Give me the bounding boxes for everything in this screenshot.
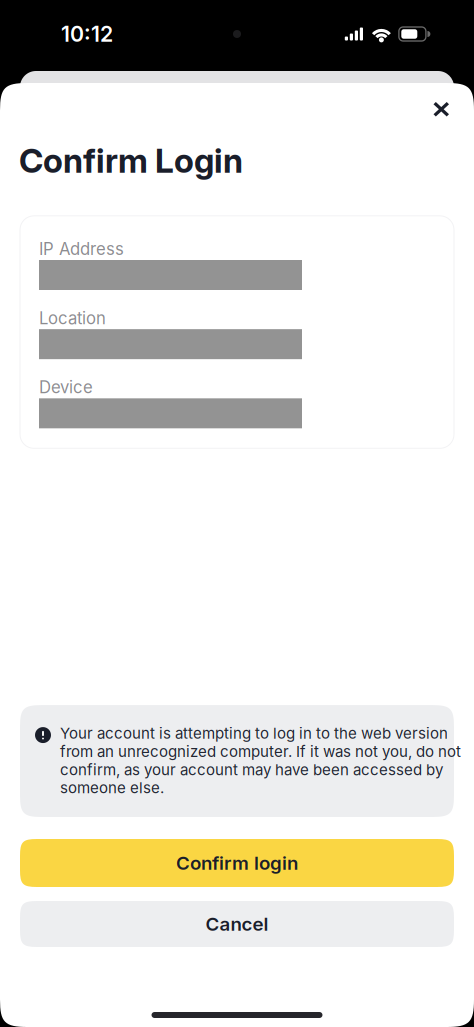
- staticText: Cancel: [205, 913, 268, 935]
- staticText: IP Address: [39, 239, 124, 259]
- staticText: Confirm Login: [19, 140, 243, 181]
- staticText: 10:12: [61, 21, 113, 47]
- button[interactable]: Cancel: [20, 901, 454, 947]
- button[interactable]: Confirm login: [20, 839, 454, 887]
- button[interactable]: Close: [422, 91, 460, 127]
- staticText: Location: [39, 308, 106, 328]
- staticText: Confirm login: [176, 852, 298, 874]
- staticText: Device: [39, 377, 93, 397]
- staticText: Your account is attempting to log in to …: [60, 724, 461, 797]
